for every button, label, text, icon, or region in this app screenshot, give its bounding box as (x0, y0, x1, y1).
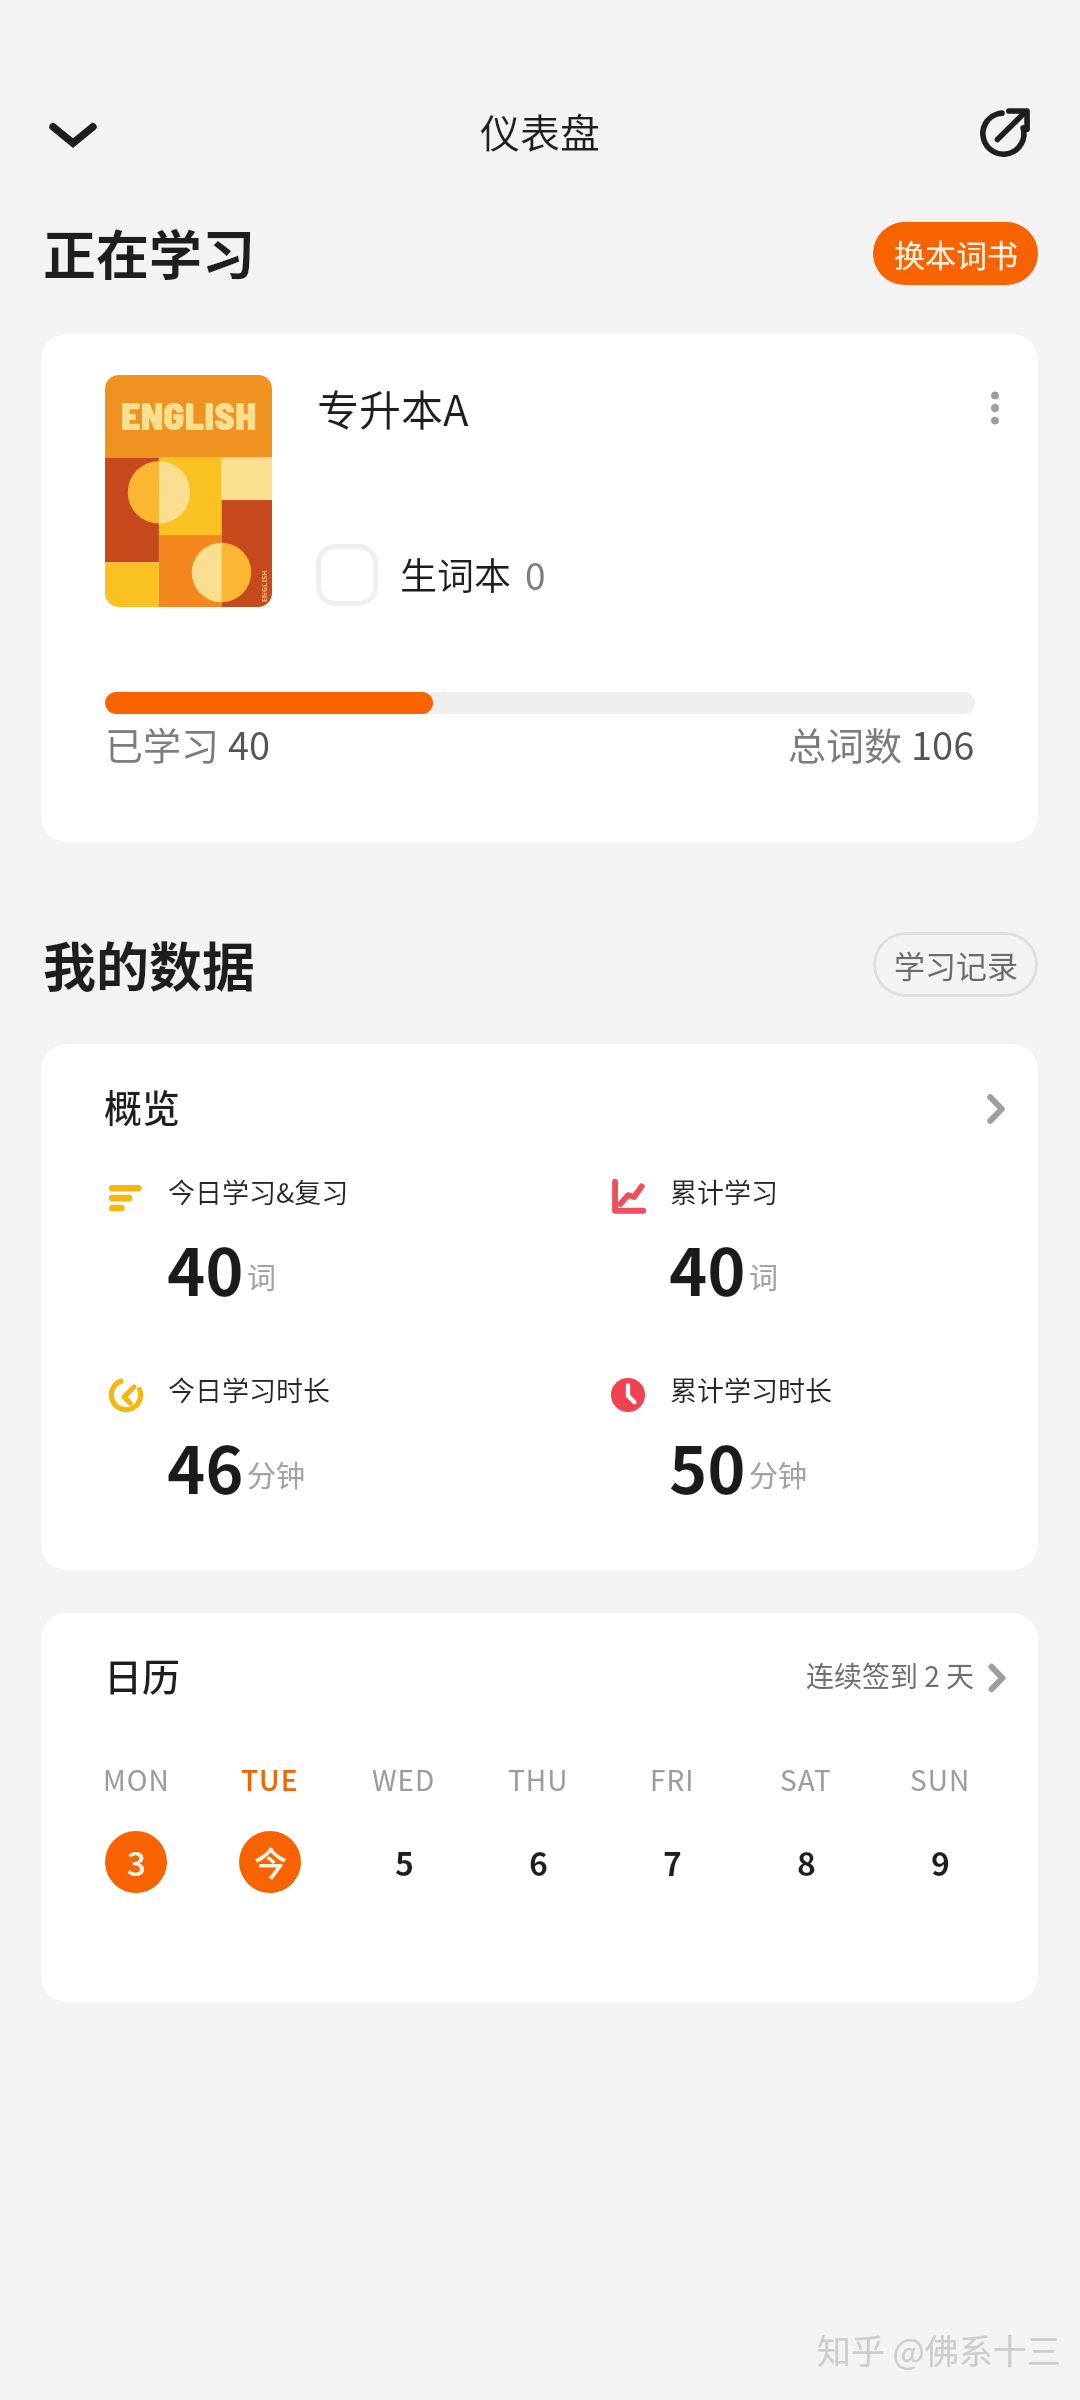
button[interactable]: More options (960, 373, 1030, 443)
button[interactable]: 5 (373, 1831, 435, 1893)
staticText: FRI (650, 1759, 695, 1800)
staticText: 40 (167, 1221, 244, 1315)
staticText: 生词本 (400, 547, 511, 601)
staticText: 分钟 (749, 1453, 808, 1495)
button[interactable]: 学习记录 (873, 932, 1038, 997)
staticText: 专升本A (317, 377, 469, 438)
staticText: 累计学习 (670, 1172, 778, 1211)
staticText: 50 (669, 1419, 746, 1513)
staticText: THU (508, 1759, 569, 1800)
staticText: 概览 (104, 1078, 181, 1133)
staticText: 词 (247, 1255, 277, 1297)
button[interactable]: Overview details (979, 1092, 1013, 1126)
staticText: 今 (254, 1838, 287, 1886)
staticText: SAT (780, 1759, 832, 1800)
staticText: MON (103, 1759, 170, 1800)
button[interactable]: 7 (641, 1831, 703, 1893)
staticText: 学习记录 (894, 942, 1018, 987)
staticText: ENGLISH (260, 570, 270, 602)
button[interactable]: 8 (775, 1831, 837, 1893)
staticText: 3 (127, 1838, 146, 1886)
staticText: 今日学习时长 (168, 1370, 330, 1409)
staticText: 40 (669, 1221, 746, 1315)
staticText: 我的数据 (43, 926, 255, 1003)
button[interactable]: 9 (909, 1831, 971, 1893)
staticText: 词 (749, 1255, 779, 1297)
button[interactable] (41, 334, 1038, 842)
staticText: 仪表盘 (480, 102, 600, 160)
staticText: 0 (525, 547, 546, 601)
staticText: 已学习 (105, 716, 220, 771)
staticText: 总词数 (788, 716, 903, 771)
button[interactable]: Share (958, 82, 1054, 178)
button[interactable]: 换本词书 (873, 222, 1038, 285)
staticText: SUN (910, 1759, 971, 1800)
button[interactable] (41, 1044, 1038, 1570)
button[interactable]: Check-in details (981, 1662, 1013, 1694)
staticText: 40 (228, 716, 271, 771)
button[interactable]: 今 (239, 1831, 301, 1893)
staticText: 6 (529, 1839, 548, 1885)
staticText: 正在学习 (43, 214, 255, 291)
staticText: 5 (395, 1839, 414, 1885)
staticText: 日历 (104, 1647, 181, 1702)
staticText: 7 (663, 1839, 682, 1885)
staticText: 46 (167, 1419, 244, 1513)
staticText: 8 (797, 1839, 816, 1885)
staticText: TUE (241, 1759, 299, 1800)
button[interactable]: Collapse (25, 85, 121, 181)
staticText: 分钟 (247, 1453, 306, 1495)
staticText: 9 (931, 1839, 950, 1885)
staticText: 知乎 @佛系十三 (817, 2325, 1061, 2374)
button[interactable]: 3 (105, 1831, 167, 1893)
staticText: 连续签到 2 天 (806, 1655, 975, 1696)
button[interactable]: 6 (507, 1831, 569, 1893)
staticText: ENGLISH (121, 392, 257, 438)
staticText: 今日学习&复习 (168, 1172, 349, 1211)
button[interactable]: Wordbook checkbox (316, 544, 378, 606)
staticText: WED (372, 1759, 436, 1800)
staticText: 累计学习时长 (670, 1370, 832, 1409)
staticText: 换本词书 (894, 231, 1018, 276)
staticText: 106 (911, 716, 975, 771)
button[interactable] (41, 1613, 1038, 2002)
